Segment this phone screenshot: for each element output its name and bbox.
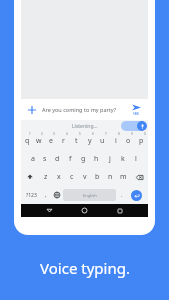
button[interactable]: g (77, 150, 90, 168)
staticText: j (109, 154, 111, 164)
button[interactable]: Backspace (130, 168, 148, 186)
button[interactable]: 4 (57, 132, 70, 150)
staticText: b (95, 172, 100, 182)
button[interactable]: 0 (135, 132, 148, 150)
button[interactable]: Enter (127, 186, 146, 204)
staticText: English (83, 193, 97, 198)
staticText: , (45, 191, 47, 199)
button[interactable]: Voice input toggle (121, 121, 147, 131)
staticText: w (36, 136, 42, 146)
staticText: u (100, 136, 105, 146)
button[interactable]: k (116, 150, 129, 168)
staticText: r (62, 136, 65, 146)
button[interactable]: , (40, 186, 51, 204)
staticText: . (121, 191, 123, 199)
staticText: 0 (144, 132, 146, 136)
staticText: 3 (53, 132, 55, 136)
button[interactable]: 2 (33, 132, 45, 150)
staticText: g (81, 154, 86, 164)
staticText: 4 (66, 132, 68, 136)
staticText: e (49, 136, 53, 146)
button[interactable]: Send SMS (128, 103, 144, 116)
button[interactable]: Recents (113, 204, 126, 217)
button[interactable]: Change language (51, 186, 63, 204)
staticText: l (135, 154, 137, 164)
staticText: SMS (133, 112, 140, 116)
staticText: t (75, 136, 78, 146)
staticText: y (88, 136, 92, 146)
button[interactable]: 7 (96, 132, 109, 150)
staticText: Voice typing. (40, 258, 130, 278)
button[interactable]: 9 (122, 132, 135, 150)
button[interactable]: ?123 (23, 186, 40, 204)
button[interactable]: x (52, 168, 65, 186)
button[interactable]: 1 (21, 132, 33, 150)
button[interactable]: Back (43, 204, 56, 217)
staticText: o (126, 136, 131, 146)
staticText: a (31, 154, 35, 164)
button[interactable]: s (39, 150, 51, 168)
staticText: p (139, 136, 144, 146)
button[interactable]: b (91, 168, 104, 186)
button[interactable]: 6 (83, 132, 96, 150)
button[interactable]: 5 (70, 132, 83, 150)
button[interactable]: Home (78, 204, 91, 217)
button[interactable]: d (51, 150, 64, 168)
staticText: n (108, 172, 113, 182)
staticText: 7 (105, 132, 107, 136)
button[interactable]: j (103, 150, 116, 168)
staticText: k (121, 154, 125, 164)
staticText: i (115, 136, 117, 146)
button[interactable]: 8 (109, 132, 122, 150)
button[interactable]: n (104, 168, 117, 186)
button[interactable]: z (39, 168, 52, 186)
staticText: h (94, 154, 99, 164)
staticText: 8 (118, 132, 120, 136)
button[interactable]: English (63, 189, 116, 201)
staticText: ?123 (26, 192, 37, 199)
staticText: z (44, 172, 48, 182)
staticText: v (83, 172, 87, 182)
staticText: m (120, 172, 127, 182)
button[interactable]: Shift (21, 168, 39, 186)
button[interactable]: v (78, 168, 91, 186)
staticText: 6 (92, 132, 94, 136)
button[interactable]: m (117, 168, 130, 186)
staticText: f (69, 154, 72, 164)
staticText: d (55, 154, 60, 164)
button[interactable]: l (129, 150, 142, 168)
button[interactable]: f (64, 150, 77, 168)
button[interactable]: . (116, 186, 127, 204)
staticText: 9 (131, 132, 133, 136)
staticText: c (70, 172, 74, 182)
staticText: s (43, 154, 47, 164)
staticText: Listening... (72, 123, 98, 130)
button[interactable]: 3 (45, 132, 57, 150)
staticText: q (25, 136, 30, 146)
button[interactable]: h (90, 150, 103, 168)
button[interactable]: c (65, 168, 78, 186)
staticText: 2 (41, 132, 43, 136)
button[interactable]: a (27, 150, 39, 168)
staticText: 1 (29, 132, 31, 136)
staticText: 5 (79, 132, 81, 136)
staticText: x (57, 172, 61, 182)
staticText: Are you coming to my party? (42, 106, 128, 113)
button[interactable]: Add attachment (25, 103, 39, 117)
